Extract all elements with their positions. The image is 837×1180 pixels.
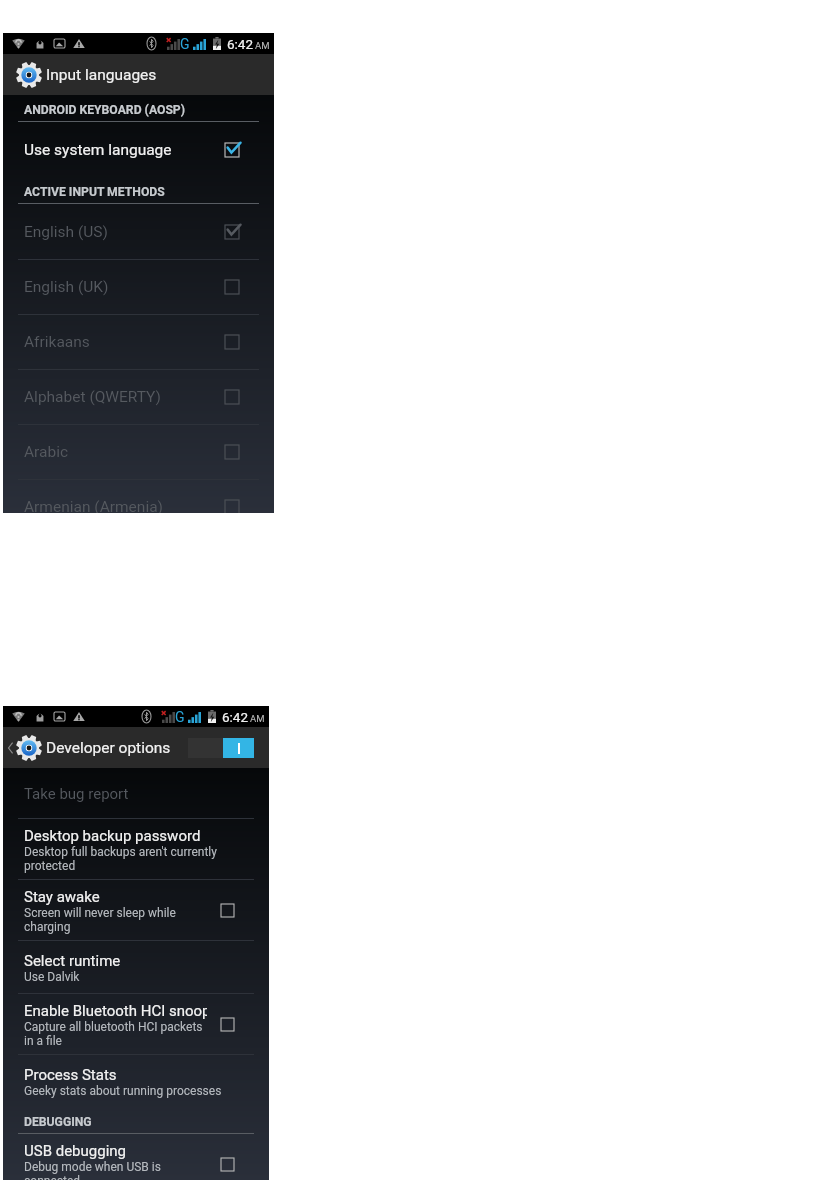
staticText: Take bug report [24, 785, 129, 803]
staticText: Use system language [24, 141, 172, 159]
staticText: English (US) [24, 223, 108, 241]
staticText: Select runtime [24, 952, 121, 970]
staticText: Armenian (Armenia) [24, 498, 163, 516]
button[interactable]: Armenian (Armenia) [3, 480, 274, 534]
button[interactable]: Afrikaans [3, 315, 274, 369]
staticText: AM [250, 713, 265, 724]
staticText: Desktop full backups aren't currently pr… [24, 845, 239, 873]
staticText: Stay awake [24, 888, 100, 906]
button[interactable]: Arabic [3, 425, 274, 479]
staticText: Input languages [46, 66, 157, 84]
button[interactable]: English (US) [225, 225, 239, 239]
staticText: Process Stats [24, 1066, 117, 1084]
button[interactable]: Afrikaans [225, 335, 239, 349]
button[interactable]: Toggle developer options [188, 738, 254, 758]
staticText: USB debugging [24, 1142, 127, 1160]
button[interactable]: Stay awake [221, 904, 234, 917]
button[interactable]: English (UK) [3, 260, 274, 314]
button[interactable]: Alphabet (QWERTY) [225, 390, 239, 404]
staticText: Desktop backup password [24, 827, 201, 845]
button[interactable]: Alphabet (QWERTY) [3, 370, 274, 424]
staticText: AM [255, 40, 270, 51]
staticText: DEBUGGING [24, 1115, 92, 1129]
button[interactable]: Process Stats [3, 1055, 269, 1107]
staticText: Geeky stats about running processes [24, 1084, 222, 1098]
button[interactable]: Select runtime [3, 941, 269, 993]
staticText: Developer options [46, 739, 171, 757]
button[interactable]: Use system language [3, 122, 274, 177]
staticText: Afrikaans [24, 333, 90, 351]
button[interactable]: Desktop backup password [3, 819, 269, 879]
staticText: Debug mode when USB is connected [24, 1160, 207, 1180]
staticText: ACTIVE INPUT METHODS [24, 185, 165, 199]
button[interactable]: Use system language [225, 143, 239, 157]
button[interactable]: Input languages [3, 54, 274, 95]
staticText: G [180, 36, 190, 52]
button[interactable]: Arabic [225, 445, 239, 459]
button[interactable]: Developer options [3, 727, 269, 768]
staticText: Alphabet (QWERTY) [24, 388, 161, 406]
button[interactable]: Take bug report [3, 768, 269, 818]
staticText: Enable Bluetooth HCI snoop log [24, 1002, 207, 1020]
staticText: G [175, 709, 185, 725]
button[interactable]: USB debugging [221, 1158, 234, 1171]
button[interactable]: Stay awake [3, 880, 269, 940]
staticText: Use Dalvik [24, 970, 80, 984]
staticText: English (UK) [24, 278, 109, 296]
button[interactable]: English (UK) [225, 280, 239, 294]
button[interactable]: USB debugging [3, 1134, 269, 1180]
button[interactable]: Enable Bluetooth HCI snoop log [221, 1018, 234, 1031]
button[interactable]: Armenian (Armenia) [225, 500, 239, 514]
staticText: 6:42 [227, 36, 254, 52]
button[interactable]: English (US) [3, 204, 274, 259]
button[interactable]: Enable Bluetooth HCI snoop log [3, 994, 269, 1054]
staticText: Screen will never sleep while charging [24, 906, 207, 934]
staticText: ANDROID KEYBOARD (AOSP) [24, 103, 186, 117]
staticText: Arabic [24, 443, 69, 461]
staticText: Capture all bluetooth HCI packets in a f… [24, 1020, 207, 1048]
staticText: 6:42 [222, 709, 249, 725]
